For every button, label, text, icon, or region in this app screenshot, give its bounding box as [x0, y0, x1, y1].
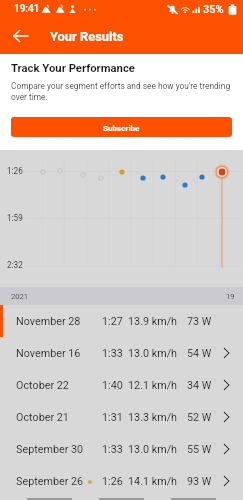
button[interactable]: September 30: [0, 433, 243, 465]
staticText: 73 W: [187, 315, 212, 328]
staticText: 1:40: [102, 379, 123, 392]
staticText: 13.3 km/h: [128, 411, 178, 424]
staticText: 1:59: [7, 213, 23, 223]
staticText: 1:27: [102, 315, 123, 328]
staticText: November 16: [16, 347, 81, 360]
button[interactable]: September 26: [0, 465, 243, 497]
staticText: 54 W: [187, 347, 212, 360]
staticText: 19: [226, 292, 235, 301]
staticText: 1:33: [102, 347, 123, 360]
button[interactable]: November 16: [0, 337, 243, 369]
button[interactable]: October 21: [0, 401, 243, 433]
staticText: Your Results: [50, 29, 124, 44]
staticText: 52 W: [187, 411, 212, 424]
staticText: 19:41: [14, 3, 40, 15]
staticText: Track Your Performance: [11, 62, 135, 75]
staticText: November 28: [16, 315, 81, 328]
staticText: October 21: [16, 411, 69, 424]
staticText: 2:32: [7, 260, 23, 270]
staticText: 1:26: [102, 475, 123, 488]
staticText: 13.0 km/h: [128, 347, 178, 360]
staticText: 1:31: [102, 411, 123, 424]
button[interactable]: October 22: [0, 369, 243, 401]
button[interactable]: Back: [8, 23, 34, 49]
staticText: 14.1 km/h: [128, 475, 178, 488]
staticText: 12.1 km/h: [128, 379, 178, 392]
staticText: Subscribe: [103, 123, 140, 132]
staticText: October 22: [16, 379, 69, 392]
staticText: September 30: [16, 443, 84, 456]
staticText: 35%: [203, 3, 224, 16]
button[interactable]: Subscribe: [11, 117, 232, 137]
staticText: 93 W: [187, 475, 212, 488]
staticText: 13.9 km/h: [128, 315, 178, 328]
staticText: 1:33: [102, 443, 123, 456]
staticText: September 26: [16, 475, 84, 488]
staticText: 13.0 km/h: [128, 443, 178, 456]
staticText: 55 W: [187, 443, 212, 456]
staticText: 2021: [11, 292, 29, 301]
staticText: 1:26: [7, 166, 23, 176]
staticText: Compare your segment efforts and see how…: [11, 81, 231, 102]
button[interactable]: November 28: [0, 305, 243, 337]
staticText: 34 W: [187, 379, 212, 392]
